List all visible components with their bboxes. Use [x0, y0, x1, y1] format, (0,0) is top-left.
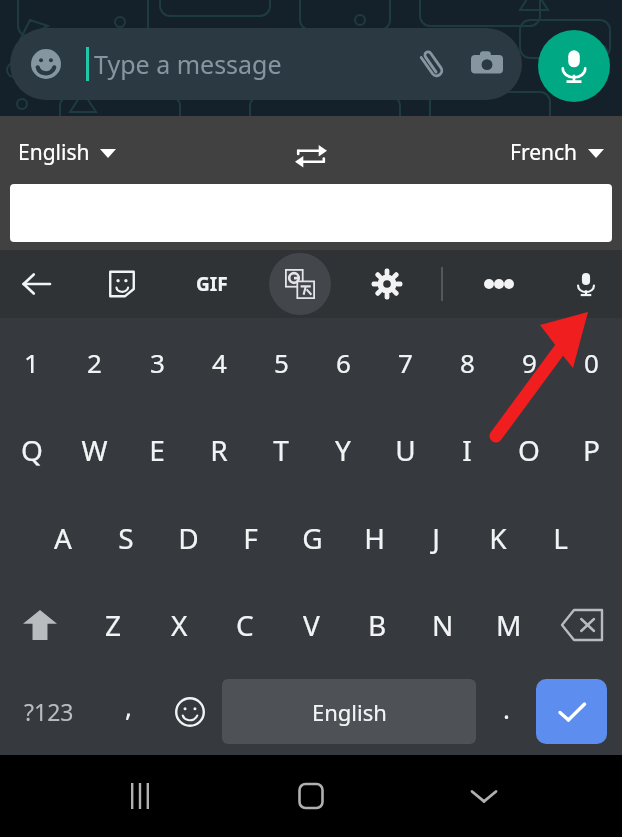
- button[interactable]: 5: [250, 318, 312, 406]
- staticText: Type a message: [94, 47, 282, 81]
- staticText: A: [54, 519, 72, 557]
- button[interactable]: B: [344, 581, 410, 668]
- staticText: U: [395, 431, 416, 469]
- button[interactable]: 8: [436, 318, 498, 406]
- button[interactable]: L: [529, 494, 591, 581]
- staticText: W: [81, 431, 108, 469]
- button[interactable]: E: [126, 406, 188, 494]
- staticText: S: [118, 519, 134, 557]
- button[interactable]: Voice input: [562, 260, 610, 308]
- staticText: G: [302, 519, 323, 557]
- button[interactable]: T: [250, 406, 312, 494]
- staticText: K: [489, 519, 507, 557]
- staticText: 0: [584, 345, 599, 380]
- button[interactable]: 6: [312, 318, 374, 406]
- button[interactable]: ?123: [0, 668, 98, 755]
- button[interactable]: V: [278, 581, 344, 668]
- button[interactable]: 2: [63, 318, 126, 406]
- staticText: B: [368, 606, 387, 644]
- button[interactable]: English: [222, 679, 476, 744]
- staticText: English: [312, 697, 387, 727]
- staticText: P: [583, 431, 600, 469]
- button[interactable]: Stickers: [98, 260, 146, 308]
- staticText: O: [518, 431, 540, 469]
- button[interactable]: Voice message: [538, 30, 610, 102]
- button[interactable]: Z: [80, 581, 146, 668]
- staticText: ,: [125, 689, 132, 724]
- button[interactable]: 7: [374, 318, 436, 406]
- button[interactable]: J: [405, 494, 467, 581]
- staticText: F: [243, 519, 258, 557]
- staticText: C: [236, 606, 254, 644]
- button[interactable]: N: [410, 581, 476, 668]
- button[interactable]: 4: [188, 318, 250, 406]
- staticText: .: [503, 691, 510, 726]
- staticText: L: [553, 519, 568, 557]
- button[interactable]: Y: [312, 406, 374, 494]
- button[interactable]: Camera: [464, 41, 510, 87]
- staticText: GIF: [196, 271, 228, 297]
- staticText: T: [273, 431, 289, 469]
- button[interactable]: English: [18, 138, 116, 167]
- button[interactable]: Home: [283, 768, 339, 824]
- button[interactable]: K: [467, 494, 529, 581]
- staticText: X: [171, 606, 188, 644]
- button[interactable]: C: [212, 581, 278, 668]
- button[interactable]: Attach: [410, 42, 454, 86]
- button[interactable]: Translate: [269, 253, 331, 315]
- button[interactable]: Shift: [0, 581, 80, 668]
- button[interactable]: 1: [0, 318, 63, 406]
- button[interactable]: H: [343, 494, 405, 581]
- button[interactable]: Settings: [363, 260, 411, 308]
- staticText: 6: [336, 345, 351, 380]
- staticText: H: [364, 519, 385, 557]
- button[interactable]: U: [374, 406, 436, 494]
- button[interactable]: Emoji: [158, 668, 222, 755]
- button[interactable]: 9: [498, 318, 560, 406]
- button[interactable]: GIF: [186, 258, 238, 310]
- staticText: I: [462, 431, 472, 469]
- button[interactable]: R: [188, 406, 250, 494]
- staticText: French: [510, 138, 578, 167]
- staticText: E: [149, 431, 165, 469]
- button[interactable]: Recents: [112, 768, 168, 824]
- button[interactable]: Backspace: [542, 581, 622, 668]
- button[interactable]: G: [281, 494, 343, 581]
- button[interactable]: I: [436, 406, 498, 494]
- button[interactable]: Back: [12, 260, 60, 308]
- button[interactable]: French: [510, 138, 604, 167]
- button[interactable]: .: [476, 668, 536, 755]
- button[interactable]: Swap languages: [289, 134, 333, 178]
- button[interactable]: X: [146, 581, 212, 668]
- button[interactable]: D: [157, 494, 219, 581]
- staticText: 8: [460, 345, 475, 380]
- button[interactable]: O: [498, 406, 560, 494]
- button[interactable]: S: [94, 494, 157, 581]
- staticText: 9: [522, 345, 537, 380]
- staticText: 7: [398, 345, 413, 380]
- staticText: 2: [87, 345, 102, 380]
- button[interactable]: Emoji: [10, 28, 522, 100]
- staticText: N: [432, 606, 454, 644]
- staticText: R: [210, 431, 228, 469]
- staticText: Y: [335, 431, 351, 469]
- button[interactable]: Q: [0, 406, 63, 494]
- button[interactable]: A: [31, 494, 94, 581]
- button[interactable]: F: [219, 494, 281, 581]
- button[interactable]: M: [476, 581, 542, 668]
- button[interactable]: 0: [560, 318, 622, 406]
- staticText: 4: [212, 345, 227, 380]
- button[interactable]: 3: [126, 318, 188, 406]
- button[interactable]: Emoji: [26, 44, 66, 84]
- button[interactable]: More options: [474, 259, 524, 309]
- button[interactable]: Hide keyboard: [456, 768, 512, 824]
- staticText: English: [18, 138, 90, 167]
- button[interactable]: P: [560, 406, 622, 494]
- button[interactable]: W: [63, 406, 126, 494]
- button[interactable]: ,: [98, 668, 158, 755]
- button[interactable]: Enter: [536, 679, 607, 744]
- staticText: D: [178, 519, 199, 557]
- staticText: ?123: [24, 696, 74, 727]
- staticText: Q: [21, 431, 43, 469]
